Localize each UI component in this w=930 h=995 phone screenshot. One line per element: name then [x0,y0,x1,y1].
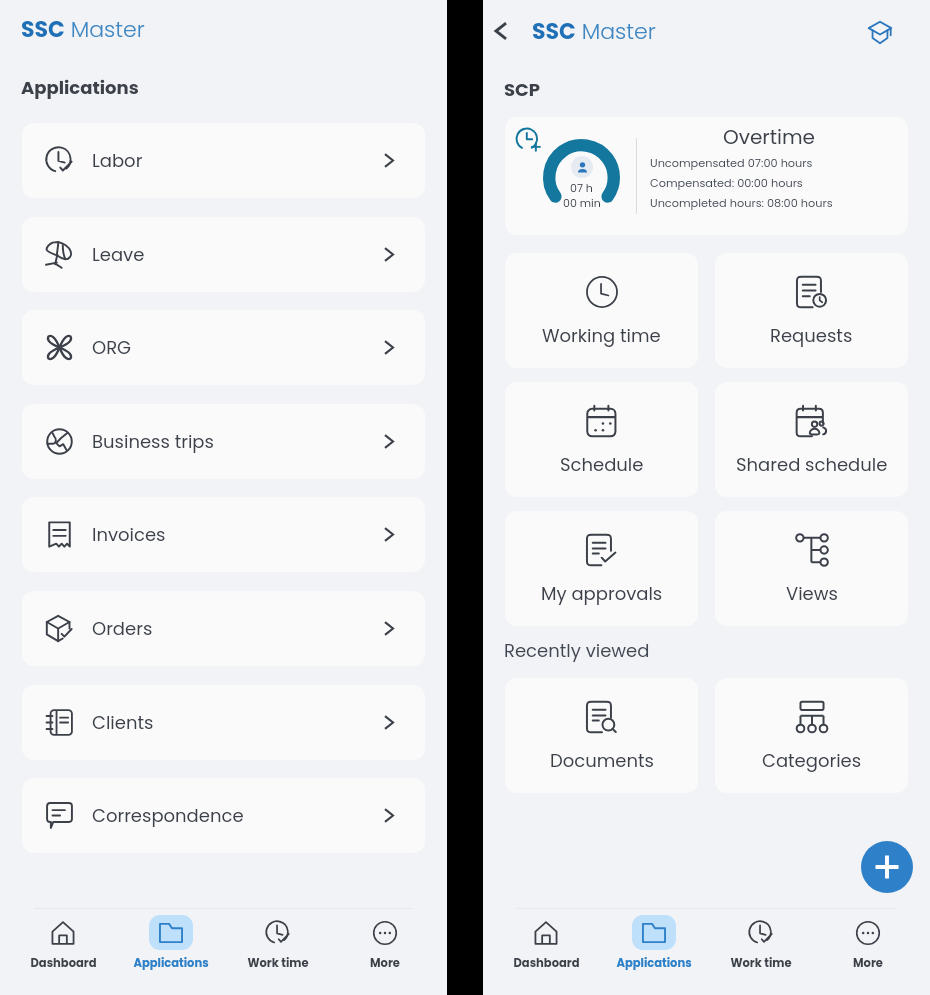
button[interactable]: Clients [22,685,425,760]
staticText: 00 min [563,195,601,210]
staticText: More [370,955,400,971]
staticText: Orders [92,616,153,641]
staticText: Invoices [92,522,166,547]
staticText: Requests [770,323,853,348]
staticText: Working time [542,323,661,348]
button[interactable]: Schedule [505,382,698,497]
button[interactable]: Work time [707,907,814,995]
button[interactable]: Dashboard [9,907,117,995]
staticText: SSC Master [532,16,656,47]
button[interactable]: Business trips [22,404,425,479]
button[interactable]: Learning [863,15,897,49]
staticText: More [853,955,883,971]
button[interactable]: Back [484,14,518,48]
staticText: Leave [92,242,145,267]
staticText: Overtime [723,123,815,151]
staticText: Work time [730,955,792,971]
staticText: Applications [21,75,139,100]
staticText: Clients [92,710,154,735]
staticText: Documents [550,748,654,773]
button[interactable]: Requests [715,253,908,368]
staticText: My approvals [541,581,663,606]
staticText: Uncompensated 07:00 hours Compensated: 0… [650,155,833,210]
button[interactable]: Views [715,511,908,626]
button[interactable]: My approvals [505,511,698,626]
button[interactable]: 07 h [505,117,908,235]
staticText: SSC Master [21,14,145,45]
button[interactable]: Shared schedule [715,382,908,497]
button[interactable]: Applications [117,907,224,995]
button[interactable]: Applications [600,907,707,995]
staticText: Schedule [560,452,644,477]
staticText: Applications [133,955,209,971]
staticText: Recently viewed [504,638,650,663]
button[interactable]: More [331,907,438,995]
button[interactable]: Orders [22,591,425,666]
button[interactable]: Documents [505,678,698,793]
button[interactable]: Correspondence [22,778,425,853]
button[interactable]: Leave [22,217,425,292]
staticText: Dashboard [30,955,97,971]
staticText: Work time [247,955,309,971]
button[interactable]: Working time [505,253,698,368]
button[interactable]: Categories [715,678,908,793]
staticText: Applications [616,955,692,971]
button[interactable]: Invoices [22,497,425,572]
button[interactable]: Dashboard [492,907,600,995]
staticText: ORG [92,335,132,360]
button[interactable]: Work time [224,907,331,995]
staticText: Views [786,581,838,606]
staticText: Dashboard [513,955,580,971]
staticText: Business trips [92,429,214,454]
staticText: Categories [762,748,862,773]
staticText: Correspondence [92,803,244,828]
staticText: SCP [504,77,541,102]
button[interactable]: More [814,907,921,995]
button[interactable]: Labor [22,123,425,198]
button[interactable]: Add [861,841,913,893]
button[interactable]: ORG [22,310,425,385]
staticText: Labor [92,148,143,173]
staticText: 07 h [570,180,593,195]
staticText: Shared schedule [736,452,888,477]
